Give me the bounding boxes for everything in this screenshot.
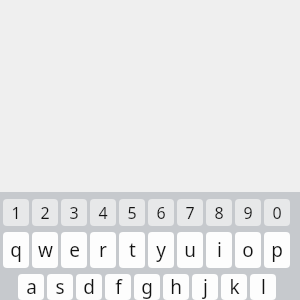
staticText: g: [141, 274, 153, 300]
button[interactable]: l: [250, 274, 276, 300]
button[interactable]: t: [119, 232, 145, 268]
button[interactable]: 6: [148, 199, 174, 226]
staticText: t: [129, 237, 136, 263]
button[interactable]: k: [221, 274, 247, 300]
button[interactable]: 8: [206, 199, 232, 226]
staticText: 3: [69, 202, 79, 224]
button[interactable]: w: [32, 232, 58, 268]
staticText: l: [261, 274, 266, 300]
button[interactable]: o: [235, 232, 261, 268]
staticText: u: [184, 237, 196, 263]
button[interactable]: f: [105, 274, 131, 300]
staticText: 1: [11, 202, 21, 224]
staticText: 7: [185, 202, 195, 224]
button[interactable]: g: [134, 274, 160, 300]
button[interactable]: d: [76, 274, 102, 300]
button[interactable]: i: [206, 232, 232, 268]
button[interactable]: p: [264, 232, 290, 268]
staticText: s: [55, 274, 65, 300]
staticText: j: [203, 274, 208, 300]
staticText: q: [10, 237, 22, 263]
button[interactable]: 9: [235, 199, 261, 226]
staticText: 8: [214, 202, 224, 224]
staticText: y: [156, 237, 166, 263]
staticText: 9: [243, 202, 253, 224]
button[interactable]: e: [61, 232, 87, 268]
button[interactable]: j: [192, 274, 218, 300]
staticText: e: [69, 237, 80, 263]
button[interactable]: 5: [119, 199, 145, 226]
staticText: i: [217, 237, 222, 263]
button[interactable]: 3: [61, 199, 87, 226]
button[interactable]: u: [177, 232, 203, 268]
staticText: h: [170, 274, 182, 300]
button[interactable]: s: [47, 274, 73, 300]
button[interactable]: 0: [264, 199, 290, 226]
button[interactable]: a: [18, 274, 44, 300]
button[interactable]: y: [148, 232, 174, 268]
button[interactable]: 2: [32, 199, 58, 226]
button[interactable]: r: [90, 232, 116, 268]
staticText: r: [99, 237, 107, 263]
button[interactable]: 4: [90, 199, 116, 226]
staticText: w: [38, 237, 53, 263]
staticText: 0: [272, 202, 282, 224]
staticText: 2: [40, 202, 50, 224]
staticText: f: [115, 274, 122, 300]
button[interactable]: 1: [3, 199, 29, 226]
staticText: a: [26, 274, 37, 300]
staticText: d: [83, 274, 95, 300]
staticText: 5: [127, 202, 137, 224]
staticText: 6: [156, 202, 166, 224]
staticText: k: [229, 274, 240, 300]
staticText: o: [242, 237, 254, 263]
button[interactable]: 7: [177, 199, 203, 226]
staticText: 4: [98, 202, 108, 224]
button[interactable]: q: [3, 232, 29, 268]
staticText: p: [271, 237, 283, 263]
button[interactable]: h: [163, 274, 189, 300]
